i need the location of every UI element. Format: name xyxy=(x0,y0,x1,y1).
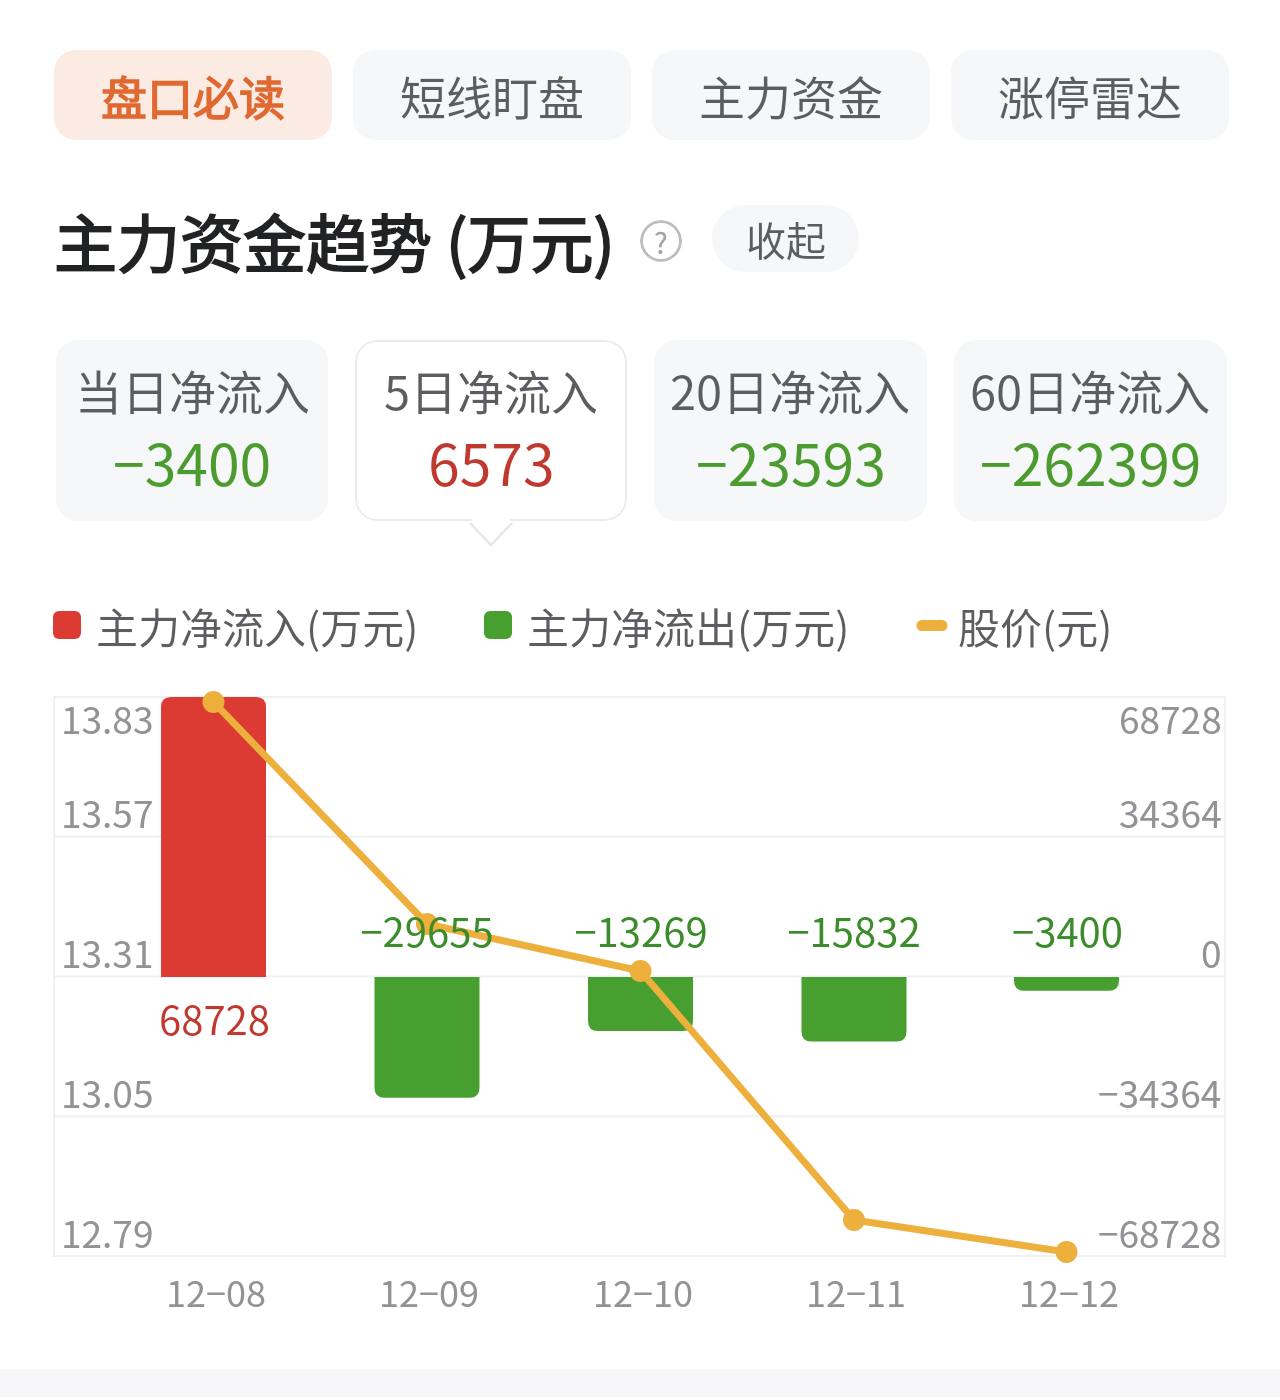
staticText: 12.79 xyxy=(61,1205,154,1259)
staticText: 主力净流入(万元) xyxy=(96,595,419,655)
staticText: −68728 xyxy=(1098,1205,1222,1259)
staticText: 股价(元) xyxy=(958,595,1113,655)
staticText: 0 xyxy=(1201,925,1222,979)
button[interactable]: 收起 xyxy=(712,205,859,272)
staticText: 13.83 xyxy=(61,691,154,745)
staticText: −15832 xyxy=(787,901,921,959)
staticText: −262399 xyxy=(980,420,1202,503)
staticText: ? xyxy=(654,220,668,262)
staticText: 20日净流入 xyxy=(670,355,911,423)
staticText: 收起 xyxy=(746,210,826,268)
button[interactable]: 5日净流入 xyxy=(355,340,627,521)
staticText: 12−12 xyxy=(1019,1265,1119,1317)
staticText: 13.57 xyxy=(61,785,154,839)
staticText: 68728 xyxy=(159,989,270,1047)
staticText: −3400 xyxy=(113,420,272,503)
staticText: 68728 xyxy=(1119,691,1222,745)
staticText: 13.05 xyxy=(61,1065,154,1119)
button[interactable]: 60日净流入 xyxy=(954,340,1227,521)
button[interactable]: 盘口必读 xyxy=(54,50,332,140)
staticText: 主力资金趋势 (万元) xyxy=(54,194,615,285)
staticText: −23593 xyxy=(696,420,886,503)
staticText: 5日净流入 xyxy=(384,355,599,423)
button[interactable]: 当日净流入 xyxy=(56,340,328,521)
button[interactable]: 20日净流入 xyxy=(654,340,927,521)
staticText: −34364 xyxy=(1098,1065,1222,1119)
button[interactable]: 涨停雷达 xyxy=(951,50,1229,140)
staticText: 12−11 xyxy=(806,1265,906,1317)
staticText: 主力净流出(万元) xyxy=(527,595,850,655)
staticText: −13269 xyxy=(574,901,708,959)
staticText: 主力资金 xyxy=(699,62,883,129)
staticText: 6573 xyxy=(428,420,555,503)
staticText: 12−09 xyxy=(379,1265,479,1317)
staticText: 盘口必读 xyxy=(101,62,285,129)
staticText: 当日净流入 xyxy=(75,355,310,423)
button[interactable]: Help xyxy=(640,220,682,262)
staticText: 13.31 xyxy=(61,925,154,979)
staticText: 12−10 xyxy=(593,1265,693,1317)
staticText: 短线盯盘 xyxy=(400,62,584,129)
button[interactable]: 短线盯盘 xyxy=(353,50,631,140)
staticText: 涨停雷达 xyxy=(998,62,1182,129)
staticText: −3400 xyxy=(1012,901,1123,959)
staticText: 34364 xyxy=(1119,785,1222,839)
staticText: 12−08 xyxy=(166,1265,266,1317)
button[interactable]: 主力资金 xyxy=(652,50,930,140)
staticText: −29655 xyxy=(360,901,494,959)
staticText: 60日净流入 xyxy=(970,355,1211,423)
